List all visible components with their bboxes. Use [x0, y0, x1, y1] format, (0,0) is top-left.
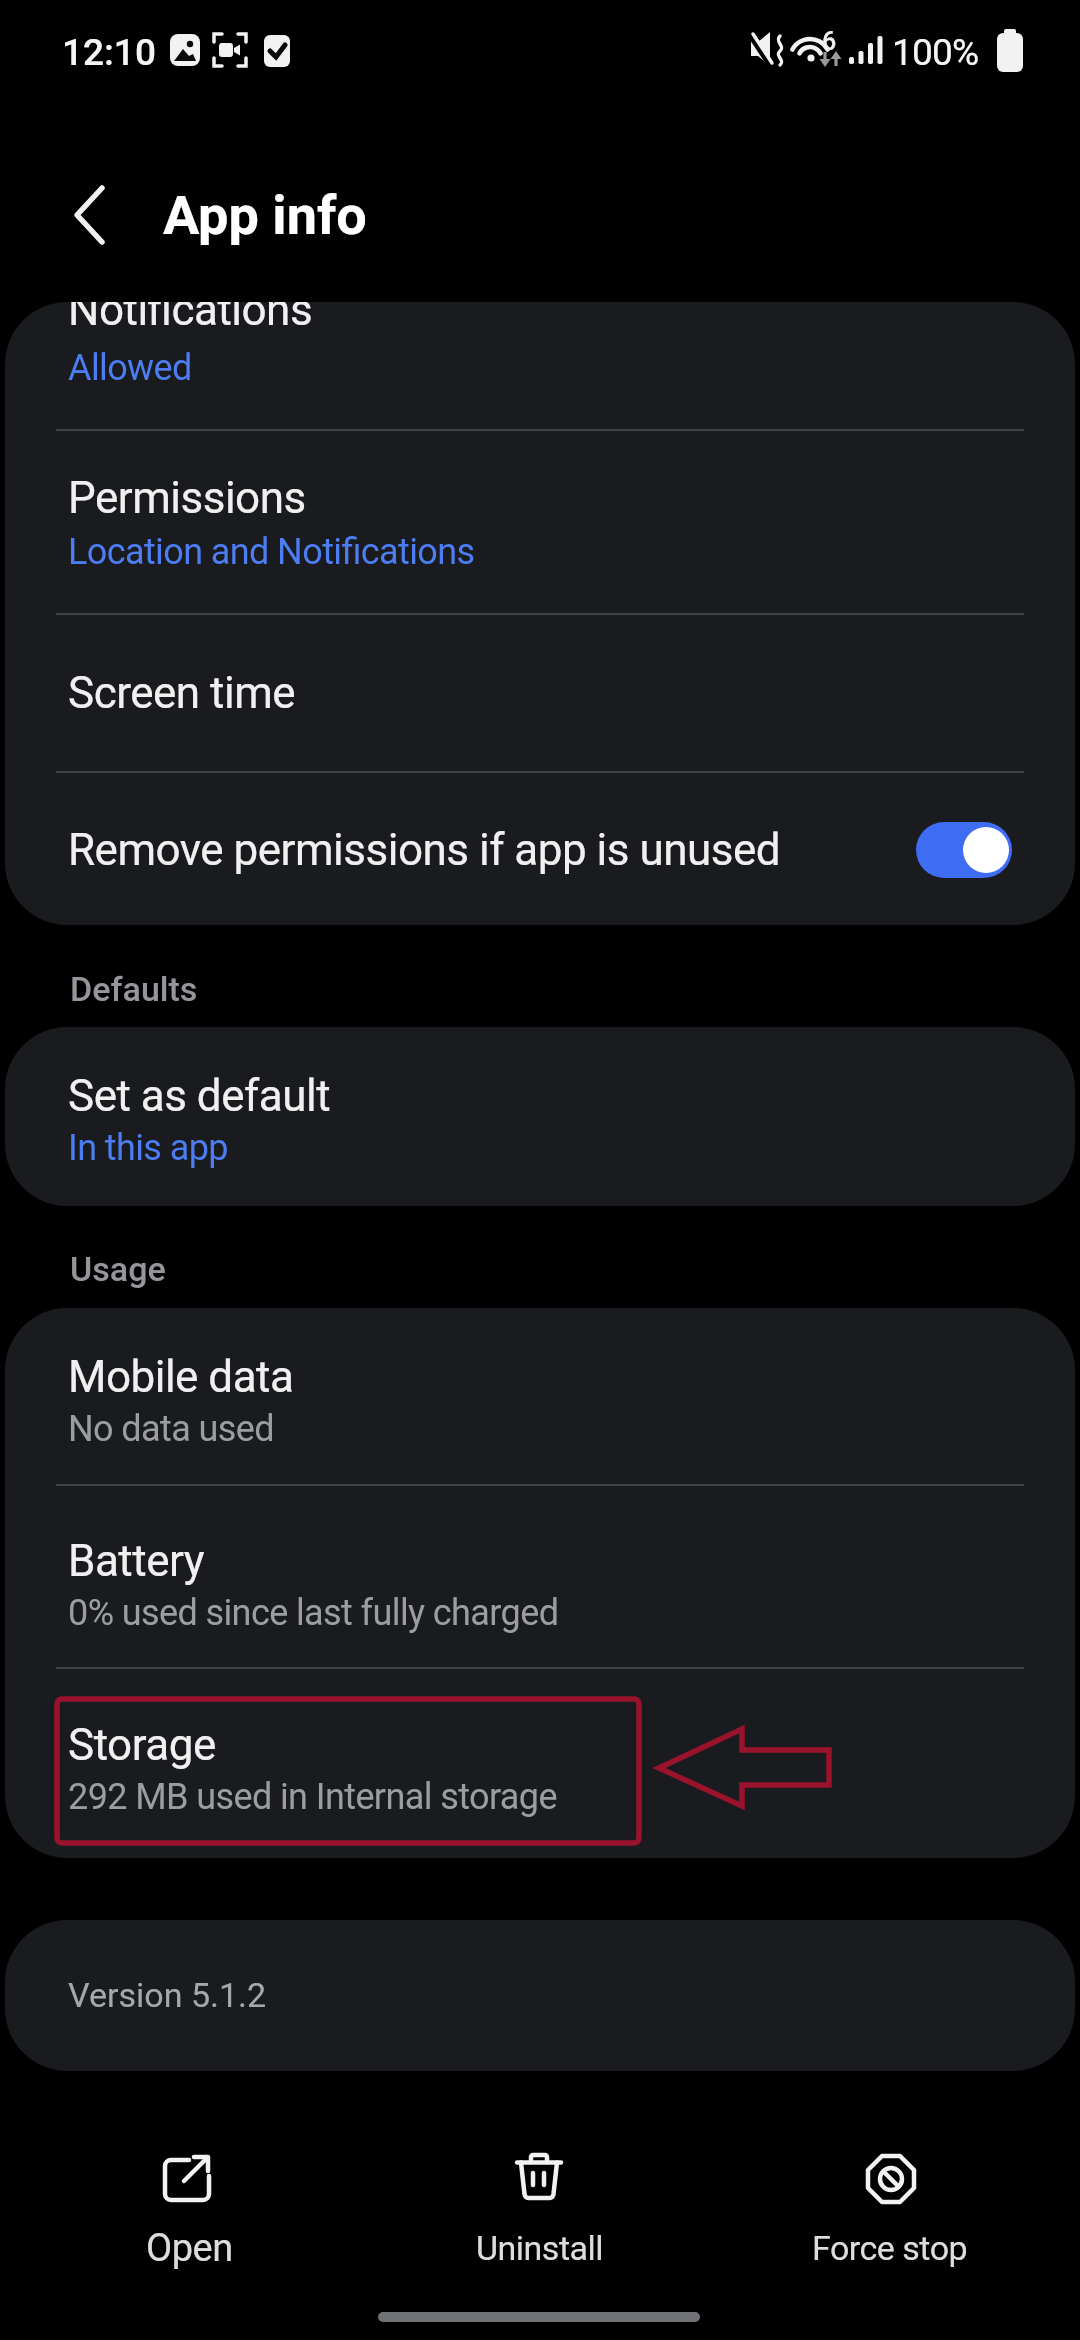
- staticText: Mobile data: [68, 1351, 294, 1403]
- button[interactable]: Set as default: [5, 1027, 1075, 1206]
- staticText: Defaults: [70, 969, 198, 1009]
- button[interactable]: [40, 165, 340, 265]
- staticText: 0% used since last fully charged: [68, 1592, 559, 1634]
- staticText: Allowed: [68, 347, 192, 389]
- staticText: 6: [822, 27, 837, 56]
- staticText: Usage: [70, 1249, 166, 1289]
- staticText: 100%: [892, 31, 979, 74]
- staticText: Location and Notifications: [68, 531, 475, 573]
- staticText: Remove permissions if app is unused: [68, 824, 781, 876]
- staticText: No data used: [68, 1408, 274, 1450]
- button[interactable]: Screen time: [5, 615, 1075, 771]
- staticText: In this app: [68, 1127, 228, 1169]
- staticText: App info: [163, 184, 367, 247]
- staticText: Battery: [68, 1535, 205, 1587]
- staticText: Version 5.1.2: [68, 1975, 267, 2015]
- staticText: Force stop: [812, 2228, 968, 2268]
- button[interactable]: Battery: [5, 1486, 1075, 1667]
- button[interactable]: Permissions: [5, 431, 1075, 614]
- button[interactable]: Uninstall: [415, 2120, 665, 2290]
- staticText: 12:10: [62, 31, 156, 74]
- staticText: Set as default: [68, 1070, 331, 1122]
- staticText: Notifications: [68, 302, 313, 336]
- button[interactable]: Mobile data: [5, 1308, 1075, 1484]
- button[interactable]: Remove permissions if app is unused: [5, 773, 1075, 925]
- staticText: Permissions: [68, 472, 306, 524]
- button[interactable]: Force stop: [765, 2120, 1015, 2290]
- staticText: Uninstall: [476, 2228, 604, 2268]
- staticText: Screen time: [68, 667, 296, 719]
- button[interactable]: Storage: [5, 1669, 1075, 1858]
- staticText: Open: [146, 2226, 233, 2271]
- staticText: 292 MB used in Internal storage: [68, 1776, 557, 1818]
- staticText: Storage: [68, 1719, 216, 1771]
- button[interactable]: Open: [64, 2120, 314, 2290]
